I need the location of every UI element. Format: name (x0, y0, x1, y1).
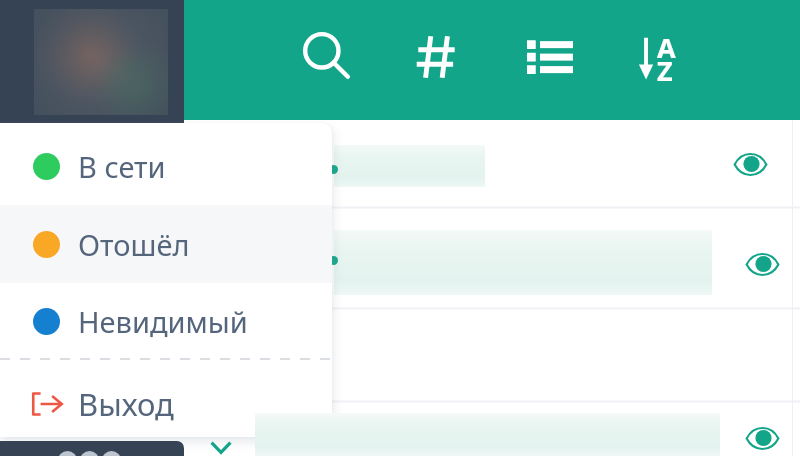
staticText: Z (657, 52, 673, 89)
button[interactable]: Profile (0, 0, 184, 123)
button[interactable]: Mark as read (736, 238, 788, 290)
button[interactable]: Sort (629, 26, 693, 90)
button[interactable]: List (518, 25, 582, 89)
staticText: В сети (78, 147, 166, 186)
button[interactable]: В сети (0, 127, 332, 205)
button[interactable]: Отошёл (0, 205, 332, 283)
button[interactable]: Mark as read (736, 412, 788, 456)
button[interactable]: Channels (405, 25, 469, 89)
button[interactable]: Search (294, 24, 358, 88)
button[interactable]: Невидимый (0, 284, 332, 358)
button[interactable]: Выход (0, 370, 332, 437)
button[interactable]: Mark as read (724, 138, 776, 190)
staticText: Отошёл (78, 225, 190, 264)
staticText: Невидимый (78, 302, 248, 341)
staticText: A (657, 29, 676, 66)
staticText: Выход (78, 383, 174, 425)
button[interactable]: Expand (203, 426, 239, 456)
